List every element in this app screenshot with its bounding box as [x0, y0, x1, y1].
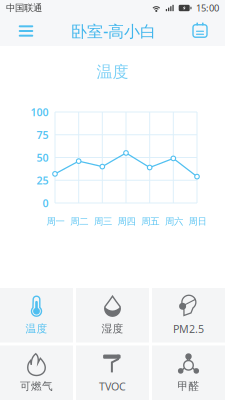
staticText: 卧室-高小白	[71, 20, 156, 42]
staticText: 湿度	[101, 322, 123, 335]
staticText: 0	[42, 196, 48, 210]
staticText: 周五	[141, 216, 159, 227]
button[interactable]: Menu	[0, 16, 52, 46]
staticText: 周二	[70, 216, 88, 227]
staticText: 周日	[189, 216, 207, 227]
staticText: 75	[36, 128, 48, 142]
button[interactable]: TVOC	[76, 345, 149, 400]
staticText: 15:00	[196, 2, 219, 14]
button[interactable]: PM2.5	[152, 288, 225, 342]
button[interactable]: 可燃气	[0, 345, 73, 400]
staticText: TVOC	[99, 379, 126, 393]
staticText: 50	[36, 150, 48, 165]
staticText: 可燃气	[20, 380, 53, 393]
staticText: 甲醛	[177, 380, 199, 393]
staticText: 周四	[118, 216, 136, 227]
button[interactable]: Records	[175, 16, 225, 46]
staticText: 周三	[94, 216, 112, 227]
staticText: 中国联通	[6, 2, 42, 14]
staticText: 温度	[25, 322, 47, 335]
button[interactable]: 甲醛	[152, 345, 225, 400]
staticText: 100	[30, 105, 48, 119]
button[interactable]: 湿度	[76, 288, 149, 342]
staticText: 25	[36, 173, 48, 187]
staticText: 温度	[96, 62, 128, 82]
staticText: 周一	[47, 216, 65, 227]
staticText: PM2.5	[173, 322, 204, 336]
staticText: 周六	[165, 216, 183, 227]
button[interactable]: 温度	[0, 288, 73, 342]
